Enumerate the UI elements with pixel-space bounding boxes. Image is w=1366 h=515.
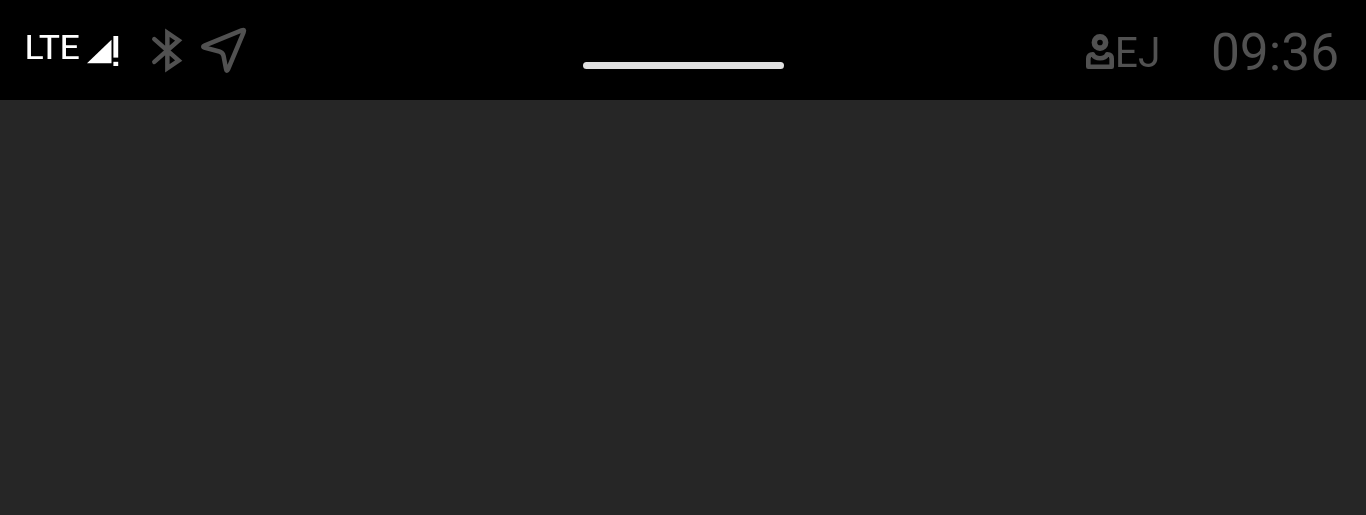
button[interactable]: Driver profile EJ bbox=[1082, 30, 1164, 74]
button[interactable]: Mobile signal: no service bbox=[87, 36, 119, 66]
button[interactable]: Clock 09:36 bbox=[1206, 26, 1344, 74]
button[interactable]: Open notification shade bbox=[583, 62, 784, 69]
button[interactable]: Bluetooth bbox=[152, 29, 181, 72]
button[interactable]: LTE bbox=[22, 28, 84, 66]
button[interactable]: Location in use bbox=[202, 29, 245, 72]
